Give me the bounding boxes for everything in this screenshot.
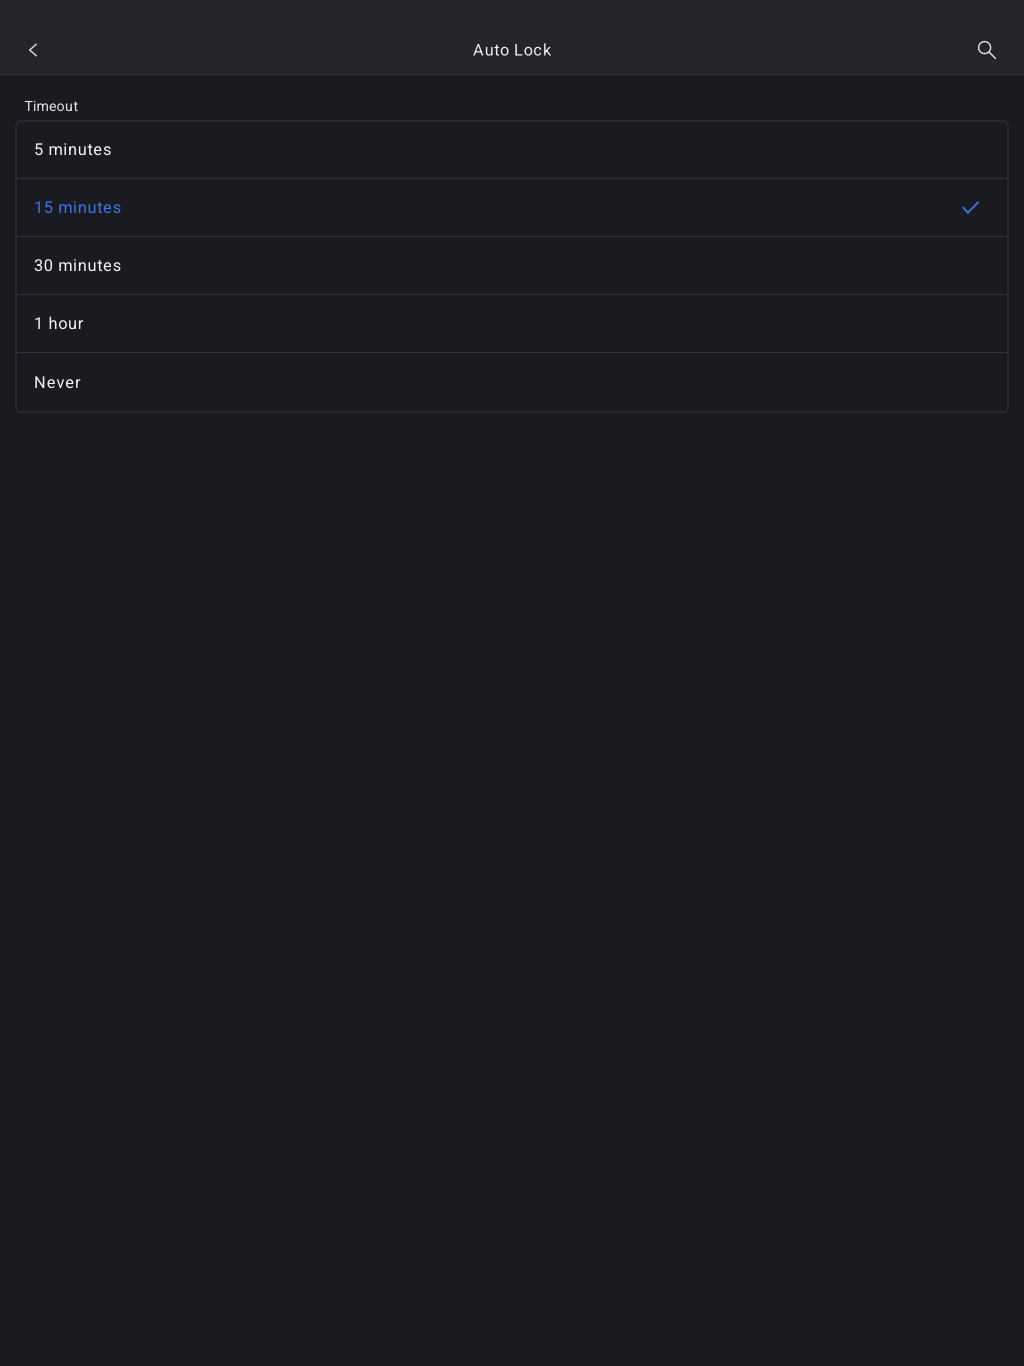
button[interactable]: 15 minutes xyxy=(16,179,1008,237)
button[interactable]: 1 hour xyxy=(16,295,1008,353)
button[interactable]: Never xyxy=(16,353,1008,412)
staticText: 30 minutes xyxy=(34,256,121,275)
staticText: Timeout xyxy=(24,98,78,115)
staticText: Never xyxy=(34,373,81,392)
button[interactable]: 5 minutes xyxy=(16,121,1008,179)
button[interactable]: Search xyxy=(950,26,1024,74)
staticText: 15 minutes xyxy=(34,198,121,217)
button[interactable]: 30 minutes xyxy=(16,237,1008,295)
staticText: 5 minutes xyxy=(34,140,111,159)
staticText: Auto Lock xyxy=(473,40,551,60)
staticText: 1 hour xyxy=(34,314,84,333)
button[interactable]: Back xyxy=(0,26,66,74)
